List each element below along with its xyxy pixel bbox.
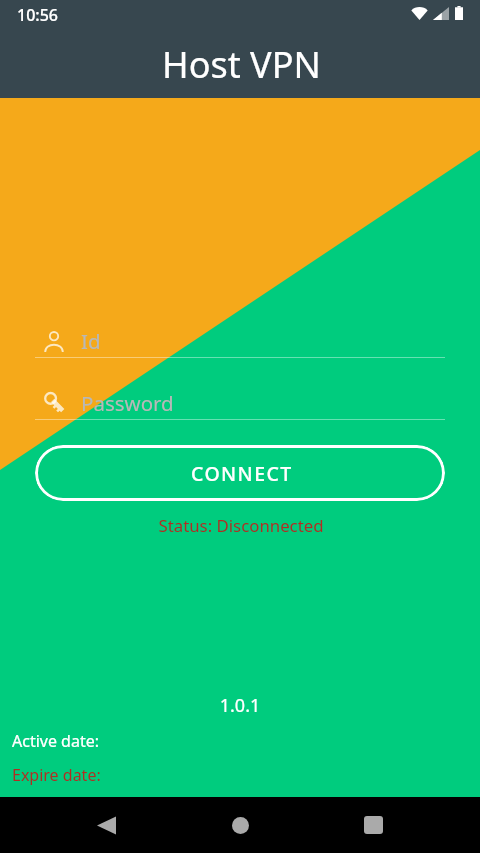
staticText: Id <box>81 327 101 355</box>
staticText: 1.0.1 <box>0 693 480 718</box>
button[interactable]: Recent apps <box>327 797 419 853</box>
staticText: Status: Disconnected <box>1 514 480 537</box>
staticText: Host VPN <box>162 40 321 89</box>
staticText: Password <box>81 389 174 417</box>
button[interactable]: Password <box>35 387 445 420</box>
button[interactable]: Home <box>194 797 286 853</box>
staticText: CONNECT <box>191 460 293 487</box>
button[interactable]: CONNECT <box>35 445 445 501</box>
staticText: Active date: <box>12 730 100 752</box>
button[interactable]: Back <box>60 797 152 853</box>
staticText: 10:56 <box>17 4 58 26</box>
staticText: Expire date: <box>12 764 101 786</box>
button[interactable]: Id <box>35 325 445 358</box>
